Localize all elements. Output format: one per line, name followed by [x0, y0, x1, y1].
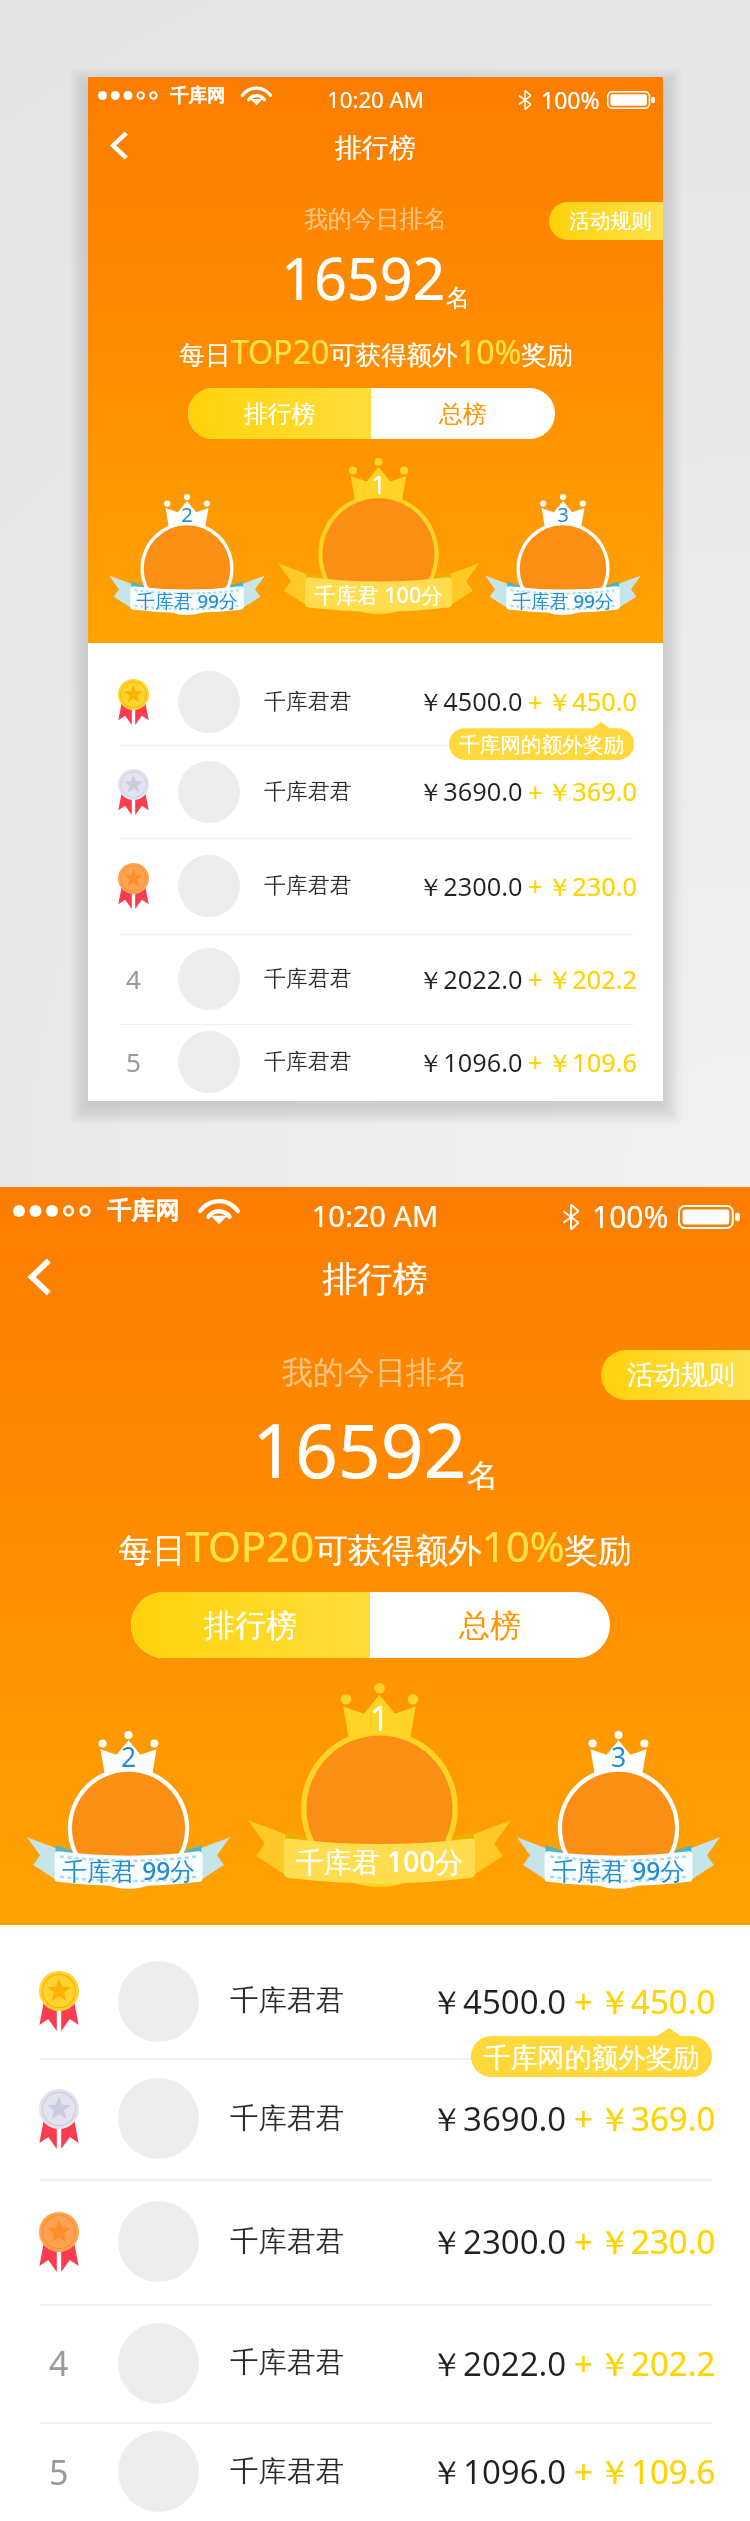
staticText: 我的今日排名	[88, 204, 663, 234]
staticText: 千库君君	[230, 2101, 344, 2137]
button[interactable]: 4	[88, 934, 663, 1024]
staticText: 名	[446, 283, 470, 313]
staticText: 千库君 99分	[109, 588, 265, 614]
staticText: ￥109.6	[547, 1045, 637, 1080]
staticText: +	[528, 685, 543, 719]
button[interactable]: Back	[90, 118, 148, 173]
button[interactable]: 千库君君	[88, 658, 663, 745]
staticText: 千库君君	[230, 2454, 344, 2490]
button[interactable]: 总榜	[370, 1592, 610, 1658]
button[interactable]: 5	[0, 2422, 750, 2521]
staticText: 16592	[252, 1398, 467, 1500]
staticText: 活动规则	[627, 1358, 735, 1392]
staticText: ￥1096.0	[430, 2449, 567, 2494]
staticText: 4	[126, 961, 141, 997]
staticText: ￥4500.0	[430, 1979, 567, 2024]
staticText: 千库君 100分	[248, 1842, 511, 1880]
staticText: ￥450.0	[598, 1979, 716, 2024]
staticText: 100%	[541, 84, 600, 115]
staticText: 总榜	[439, 399, 487, 429]
button[interactable]: 活动规则	[601, 1350, 750, 1400]
staticText: 千库君君	[264, 872, 352, 900]
button[interactable]: 千库君君	[88, 745, 663, 838]
staticText: ￥2022.0	[418, 962, 523, 997]
staticText: 千库君 99分	[27, 1854, 230, 1887]
button[interactable]: 千库君君	[0, 2058, 750, 2179]
staticText: 4	[49, 2340, 69, 2386]
staticText: 3	[485, 500, 641, 528]
staticText: 名	[467, 1456, 498, 1495]
staticText: ￥109.6	[598, 2449, 716, 2494]
staticText: 千库君君	[230, 2345, 344, 2381]
staticText: +	[574, 2341, 593, 2386]
button[interactable]: 千库君君	[0, 1944, 750, 2058]
staticText: ￥202.2	[598, 2341, 716, 2386]
staticText: +	[574, 1979, 593, 2024]
button[interactable]: 排行榜	[188, 388, 371, 439]
staticText: 活动规则	[569, 208, 652, 234]
staticText: 排行榜	[88, 131, 663, 165]
staticText: 排行榜	[0, 1257, 750, 1301]
staticText: 3	[517, 1739, 720, 1775]
staticText: +	[528, 962, 543, 996]
staticText: 5	[49, 2449, 69, 2495]
staticText: +	[574, 2219, 593, 2264]
staticText: 千库网的额外奖励	[449, 732, 634, 758]
staticText: ￥230.0	[547, 869, 637, 904]
staticText: 千库君 100分	[278, 580, 479, 609]
staticText: ￥450.0	[547, 684, 637, 719]
staticText: 千库君君	[264, 688, 352, 716]
staticText: +	[574, 2096, 593, 2141]
button[interactable]: 活动规则	[549, 202, 663, 240]
staticText: 千库网	[107, 1196, 179, 1226]
staticText: 千库网的额外奖励	[471, 2041, 712, 2075]
button[interactable]: 排行榜	[131, 1592, 370, 1658]
staticText: ￥369.0	[598, 2096, 716, 2141]
staticText: ￥202.2	[547, 962, 637, 997]
staticText: 总榜	[459, 1606, 521, 1645]
staticText: ￥369.0	[547, 774, 637, 809]
button[interactable]: 总榜	[371, 388, 555, 439]
staticText: +	[528, 869, 543, 903]
staticText: ￥2300.0	[418, 869, 523, 904]
staticText: ￥1096.0	[418, 1045, 523, 1080]
staticText: 千库君 99分	[485, 588, 641, 614]
staticText: 100%	[592, 1196, 669, 1237]
staticText: 排行榜	[204, 1606, 297, 1645]
staticText: 排行榜	[244, 399, 316, 429]
staticText: 10:20 AM	[0, 1196, 750, 1235]
staticText: ￥230.0	[598, 2219, 716, 2264]
staticText: 千库君君	[230, 1983, 344, 2019]
staticText: 1	[278, 466, 479, 502]
staticText: 2	[109, 500, 265, 528]
staticText: 2	[27, 1739, 230, 1775]
button[interactable]: Back	[2, 1241, 78, 1313]
staticText: 每日TOP20可获得额外10%奖励	[179, 330, 573, 374]
staticText: ￥4500.0	[418, 684, 523, 719]
button[interactable]: 千库君君	[88, 838, 663, 934]
staticText: 5	[126, 1044, 141, 1080]
staticText: 千库君君	[264, 778, 352, 806]
staticText: 千库君君	[264, 965, 352, 993]
staticText: 千库君 99分	[517, 1854, 720, 1887]
staticText: ￥2300.0	[430, 2219, 567, 2264]
staticText: ￥3690.0	[430, 2096, 567, 2141]
button[interactable]: 4	[0, 2304, 750, 2422]
staticText: +	[528, 1045, 543, 1079]
staticText: 每日TOP20可获得额外10%奖励	[118, 1517, 632, 1574]
button[interactable]: 5	[88, 1024, 663, 1100]
staticText: 我的今日排名	[0, 1353, 750, 1392]
button[interactable]: 千库君君	[0, 2179, 750, 2304]
staticText: 1	[248, 1694, 511, 1741]
staticText: ￥2022.0	[430, 2341, 567, 2386]
staticText: 千库网	[170, 84, 226, 107]
staticText: +	[574, 2449, 593, 2494]
staticText: ￥3690.0	[418, 774, 523, 809]
staticText: +	[528, 775, 543, 809]
staticText: 千库君君	[230, 2224, 344, 2260]
staticText: 16592	[281, 239, 446, 317]
staticText: 10:20 AM	[88, 84, 663, 114]
staticText: 千库君君	[264, 1048, 352, 1076]
